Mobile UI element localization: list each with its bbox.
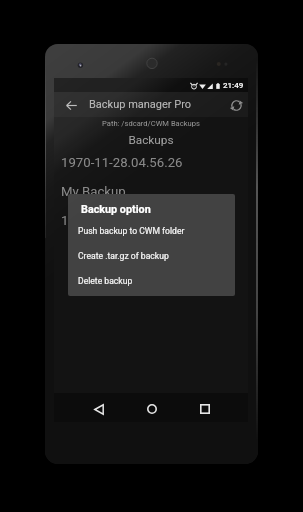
staticText: My Backup xyxy=(61,184,126,199)
staticText: Push backup to CWM folder xyxy=(78,226,185,236)
button[interactable]: Back xyxy=(88,398,110,420)
button[interactable]: My Backup xyxy=(54,177,248,206)
staticText: 21:49 xyxy=(223,81,244,90)
button[interactable]: Recents xyxy=(194,398,216,420)
staticText: 1970-11-28.04.56.26 xyxy=(61,155,183,170)
button[interactable]: Refresh xyxy=(225,94,247,116)
staticText: 1970-11-28.04.56.26 xyxy=(61,213,183,228)
button[interactable]: Home xyxy=(141,398,163,420)
staticText: Backup option xyxy=(81,203,151,216)
staticText: Backups xyxy=(54,133,248,147)
button[interactable]: Delete backup xyxy=(68,268,235,293)
staticText: Delete backup xyxy=(78,276,133,286)
button[interactable]: 1970-11-28.04.56.26 xyxy=(54,206,248,235)
staticText: Create .tar.gz of backup xyxy=(78,251,169,261)
button[interactable]: Navigate up xyxy=(61,95,81,115)
staticText: Backup manager Pro xyxy=(89,98,192,111)
staticText: Path: /sdcard/CWM Backups xyxy=(54,119,248,128)
button[interactable]: Create .tar.gz of backup xyxy=(68,243,235,268)
button[interactable]: Push backup to CWM folder xyxy=(68,218,235,243)
button[interactable]: 1970-11-28.04.56.26 xyxy=(54,148,248,177)
